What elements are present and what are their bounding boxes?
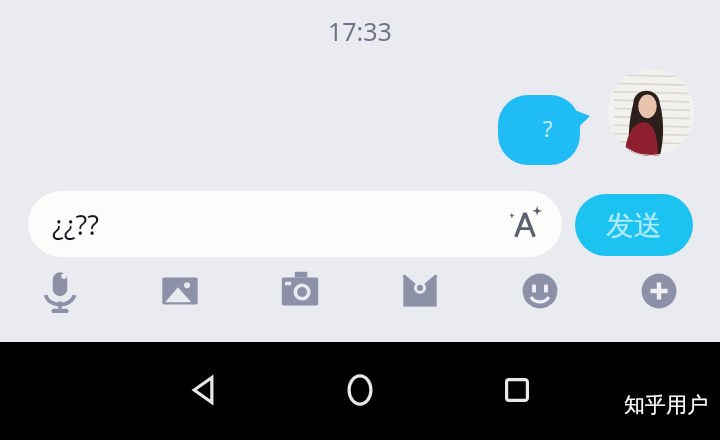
staticText: ¿¿?? (52, 206, 502, 243)
button[interactable]: Voice message (34, 265, 86, 317)
staticText: 发送 (606, 208, 662, 243)
staticText: 17:33 (328, 14, 392, 48)
button[interactable]: ¿¿?? (28, 191, 562, 257)
button[interactable]: Mail (394, 265, 446, 317)
button[interactable]: Camera (274, 265, 326, 317)
button[interactable]: More (633, 265, 685, 317)
button[interactable]: AI text assist (502, 201, 548, 247)
button[interactable]: Back (177, 364, 229, 416)
button[interactable]: Home (334, 364, 386, 416)
staticText: ? (543, 113, 553, 143)
button[interactable]: Recent apps (491, 364, 543, 416)
button[interactable]: 发送 (575, 194, 693, 256)
button[interactable]: Photos (154, 265, 206, 317)
button[interactable]: Profile photo (607, 68, 695, 156)
button[interactable]: Stickers (514, 265, 566, 317)
button[interactable]: ? (498, 95, 590, 165)
staticText: 知乎用户 (624, 392, 708, 418)
